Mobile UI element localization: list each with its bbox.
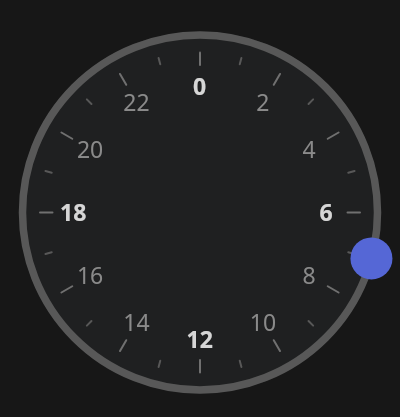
button[interactable] (19, 32, 381, 394)
